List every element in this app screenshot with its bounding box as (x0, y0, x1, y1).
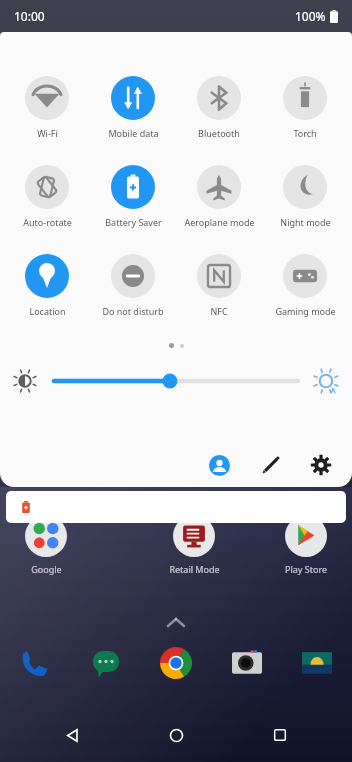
staticText: NFC (210, 305, 228, 317)
staticText: Aeroplane mode (184, 216, 255, 228)
button[interactable]: Do not disturb (90, 254, 176, 317)
staticText: Play Store (285, 563, 327, 575)
staticText: Google (31, 563, 62, 575)
button[interactable] (224, 640, 270, 686)
staticText: Mobile data (108, 127, 159, 139)
staticText: Wi-Fi (37, 127, 58, 139)
button[interactable]: Night mode (262, 165, 348, 228)
button[interactable]: Retail Mode (156, 515, 232, 575)
staticText: Gaming mode (275, 305, 336, 317)
button[interactable]: Play Store (268, 515, 344, 575)
button[interactable] (83, 640, 129, 686)
staticText: Night mode (280, 216, 331, 228)
button[interactable]: Wi-Fi (4, 76, 90, 139)
button[interactable]: Back (46, 709, 98, 761)
button[interactable]: Auto-rotate (4, 165, 90, 228)
button[interactable]: User (202, 448, 236, 482)
button[interactable]: Gaming mode (262, 254, 348, 317)
button[interactable] (12, 640, 58, 686)
staticText: Battery Saver (105, 216, 162, 228)
button[interactable]: Aeroplane mode (176, 165, 262, 228)
button[interactable]: Recents (254, 709, 306, 761)
button[interactable]: NFC (176, 254, 262, 317)
button[interactable]: Settings (304, 448, 338, 482)
button[interactable]: Mobile data (90, 76, 176, 139)
other: Auto brightness (314, 369, 338, 393)
staticText: Do not disturb (102, 305, 164, 317)
button[interactable]: Location (4, 254, 90, 317)
button[interactable]: Home (150, 709, 202, 761)
staticText: Auto-rotate (23, 216, 72, 228)
staticText: 10:00 (14, 8, 45, 24)
button[interactable] (153, 640, 199, 686)
staticText: Bluetooth (198, 127, 240, 139)
button[interactable]: Battery Saver (90, 165, 176, 228)
button[interactable] (294, 640, 340, 686)
button[interactable]: Bluetooth (176, 76, 262, 139)
button[interactable]: Torch (262, 76, 348, 139)
staticText: Torch (293, 127, 317, 139)
staticText: Retail Mode (169, 563, 220, 575)
staticText: Location (29, 305, 66, 317)
button[interactable]: Google (8, 515, 84, 575)
button[interactable]: Edit (253, 448, 287, 482)
button[interactable] (6, 491, 346, 523)
staticText: 100% (295, 8, 326, 24)
